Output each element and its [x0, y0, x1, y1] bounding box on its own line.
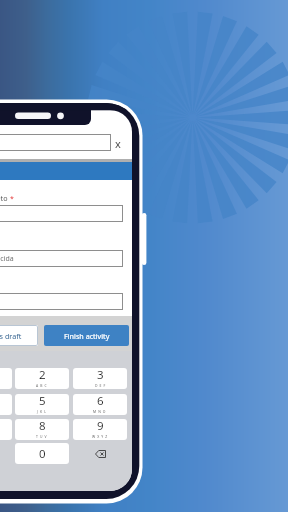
staticText: T U V — [36, 434, 48, 439]
button[interactable] — [73, 443, 127, 464]
button[interactable] — [0, 293, 123, 310]
staticText: 3 — [97, 368, 104, 383]
staticText: x — [115, 136, 121, 151]
staticText: J K L — [37, 409, 47, 414]
staticText: Finish activity — [64, 331, 110, 341]
staticText: 6 — [97, 394, 104, 409]
button[interactable]: Fecha de nacida — [0, 250, 123, 267]
button[interactable]: 3 — [73, 368, 127, 389]
button[interactable]: 7 — [0, 419, 12, 440]
staticText: W X Y Z — [92, 434, 108, 439]
button[interactable]: 8 — [15, 419, 69, 440]
button[interactable]: Save as draft — [0, 325, 38, 346]
staticText: D E F — [95, 383, 106, 388]
staticText: M N O — [93, 409, 107, 414]
staticText: 5 — [39, 394, 46, 409]
button[interactable]: 0 — [15, 443, 69, 464]
staticText: Nombre completo — [0, 193, 10, 203]
staticText: 8 — [39, 419, 46, 434]
button[interactable] — [0, 205, 123, 222]
staticText: A B C — [36, 383, 48, 388]
button[interactable]: 2 — [15, 368, 69, 389]
staticText: 0 — [39, 446, 46, 462]
button[interactable]: 4 — [0, 394, 12, 415]
button[interactable]: Finish activity — [44, 325, 129, 346]
button[interactable] — [0, 134, 111, 151]
button[interactable]: 6 — [73, 394, 127, 415]
button[interactable]: 9 — [73, 419, 127, 440]
staticText: 9 — [97, 419, 104, 434]
staticText: Save as draft — [0, 331, 22, 341]
staticText: 2 — [39, 368, 46, 383]
staticText: * — [10, 194, 14, 204]
button[interactable]: 5 — [15, 394, 69, 415]
button[interactable]: 1 — [0, 368, 12, 389]
staticText: Fecha de nacida — [0, 254, 14, 264]
